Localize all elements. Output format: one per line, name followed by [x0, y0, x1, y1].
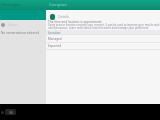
- staticText: Managed: [48, 37, 62, 41]
- button[interactable]: Back: [1, 111, 4, 114]
- staticText: Inbox: [8, 23, 17, 27]
- button[interactable]: Camera: [5, 109, 16, 115]
- staticText: The time and location is approximate: [48, 20, 102, 24]
- button[interactable]: Exported: [46, 42, 160, 49]
- staticText: Messages: [1, 2, 21, 7]
- staticText: Details: [58, 14, 69, 19]
- staticText: Location: [48, 31, 61, 35]
- staticText: Using precise location requires your con…: [48, 23, 160, 30]
- button[interactable]: Inbox: [0, 22, 46, 28]
- button[interactable]: Account: [50, 14, 55, 20]
- staticText: Compose: [49, 2, 67, 7]
- button[interactable]: Location: [46, 30, 160, 35]
- button[interactable]: No conversations selected: [0, 30, 46, 36]
- staticText: Exported: [48, 44, 62, 48]
- staticText: No conversations selected: [1, 31, 40, 35]
- button[interactable]: Managed: [46, 35, 160, 42]
